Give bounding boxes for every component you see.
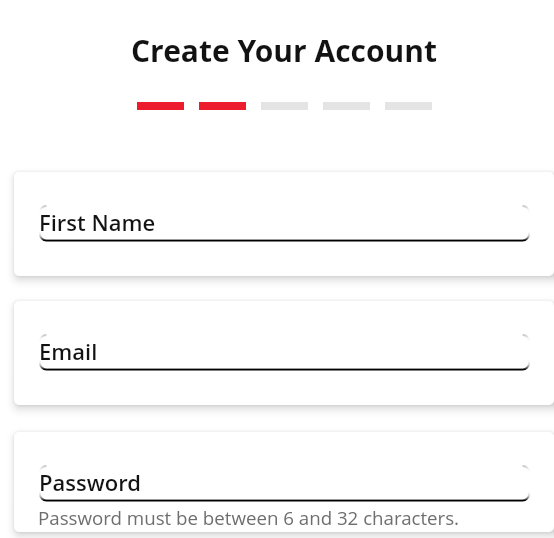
staticText: Password must be between 6 and 32 charac… bbox=[38, 505, 460, 530]
staticText: Create Your Account bbox=[131, 30, 438, 71]
staticText: Password bbox=[39, 467, 141, 497]
button[interactable]: Email bbox=[14, 301, 554, 405]
staticText: Email bbox=[39, 336, 98, 366]
button[interactable]: First Name bbox=[14, 172, 554, 276]
button[interactable]: First Name bbox=[39, 205, 530, 241]
button[interactable]: Email bbox=[39, 334, 530, 370]
button[interactable]: Password bbox=[39, 465, 530, 501]
button[interactable]: Password bbox=[14, 432, 554, 532]
staticText: First Name bbox=[39, 207, 156, 237]
